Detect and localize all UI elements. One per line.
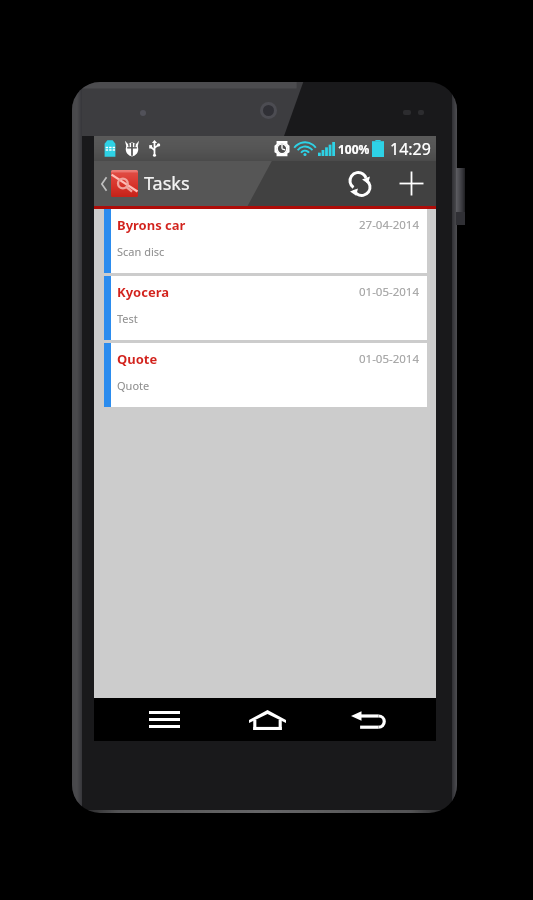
button[interactable]: Navigate up [94, 166, 141, 201]
staticText: Quote [117, 378, 150, 393]
staticText: Tasks [144, 171, 190, 196]
staticText: Test [117, 311, 138, 326]
staticText: 27-04-2014 [359, 217, 420, 233]
button[interactable]: Byrons car [104, 209, 427, 273]
button[interactable]: Refresh [333, 161, 387, 206]
button[interactable]: Kyocera [104, 276, 427, 340]
staticText: 01-05-2014 [359, 351, 420, 367]
button[interactable]: Recent apps [129, 698, 200, 741]
staticText: Byrons car [117, 216, 186, 234]
button[interactable]: Quote [104, 343, 427, 407]
staticText: Scan disc [117, 244, 165, 259]
staticText: 14:29 [390, 138, 431, 160]
button[interactable]: Add task [387, 161, 435, 206]
staticText: 01-05-2014 [359, 284, 420, 300]
staticText: 100% [338, 141, 370, 157]
staticText: Kyocera [117, 283, 169, 301]
staticText: Quote [117, 350, 158, 368]
button[interactable]: Home [232, 698, 303, 741]
button[interactable]: Back [333, 698, 404, 741]
